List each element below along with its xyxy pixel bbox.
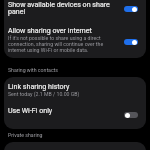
button[interactable]: Link sharing history — [4, 77, 146, 101]
staticText: If it's not possible to share using a di… — [8, 35, 104, 53]
staticText: Private sharing — [8, 132, 43, 138]
staticText: Use Wi-Fi only — [8, 106, 53, 114]
staticText: Sharing with contacts — [8, 67, 58, 73]
button[interactable]: Show available devices on share panel — [124, 6, 138, 12]
staticText: Show available devices on share panel — [8, 0, 110, 15]
button[interactable]: Use Wi-Fi only — [4, 101, 146, 128]
button[interactable]: Allow sharing over internet — [124, 39, 138, 45]
button[interactable]: Show available devices on share panel — [4, 0, 146, 19]
staticText: Allow sharing over internet — [8, 26, 92, 34]
staticText: Link sharing history — [8, 82, 70, 90]
staticText: Sent today (2.1 MB / 10.00 GB) — [8, 91, 80, 97]
button[interactable]: Allow sharing over internet — [4, 19, 146, 57]
button[interactable]: Use Wi-Fi only — [124, 112, 138, 118]
